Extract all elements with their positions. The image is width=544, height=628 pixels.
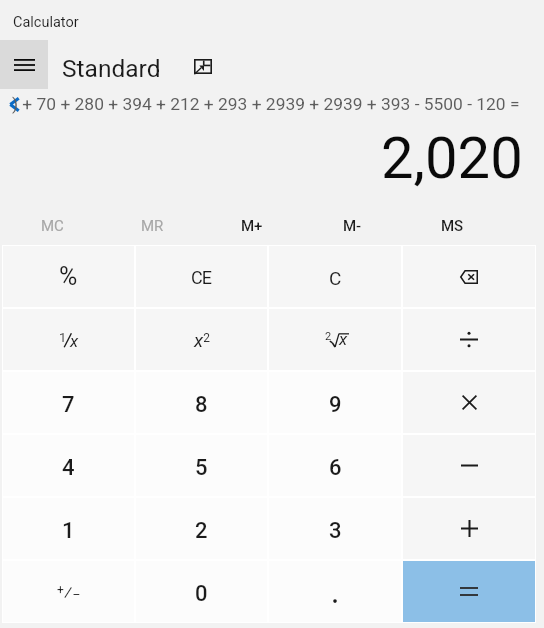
button[interactable]: Backspace bbox=[403, 246, 535, 307]
button[interactable]: M+ bbox=[202, 206, 302, 245]
button[interactable]: Open navigation menu bbox=[0, 40, 48, 89]
button[interactable]: 7 bbox=[3, 372, 134, 433]
staticText: 9 bbox=[329, 392, 342, 418]
staticText: M- bbox=[343, 217, 362, 235]
button[interactable]: 1 bbox=[3, 309, 134, 370]
other: Subtract bbox=[403, 435, 535, 496]
staticText: 1 bbox=[59, 330, 67, 345]
button[interactable]: MS bbox=[402, 206, 502, 245]
staticText: 3 bbox=[329, 518, 342, 544]
button[interactable]: 6 bbox=[269, 435, 401, 496]
button[interactable]: 1 bbox=[3, 498, 134, 559]
staticText: Calculator bbox=[13, 14, 79, 31]
staticText: Standard bbox=[62, 54, 161, 83]
button[interactable]: 5 bbox=[136, 435, 267, 496]
staticText: x bbox=[70, 331, 79, 351]
staticText: 7 bbox=[62, 392, 75, 418]
staticText: MR bbox=[141, 217, 164, 235]
button[interactable]: Subtract bbox=[403, 435, 535, 496]
button[interactable]: MR bbox=[102, 206, 202, 245]
other: Add bbox=[403, 498, 535, 559]
button[interactable]: CE bbox=[136, 246, 267, 307]
staticText: x bbox=[339, 329, 348, 349]
staticText: C bbox=[329, 267, 342, 289]
button[interactable]: Keep on top bbox=[187, 51, 219, 81]
button[interactable]: M- bbox=[302, 206, 402, 245]
other: Divide bbox=[403, 309, 535, 370]
button[interactable] bbox=[269, 561, 401, 622]
staticText: CE bbox=[191, 267, 212, 288]
button[interactable]: 4 bbox=[3, 435, 134, 496]
button[interactable]: Equals bbox=[403, 561, 535, 622]
staticText: M+ bbox=[241, 217, 263, 235]
button[interactable]: Scroll history left bbox=[4, 94, 24, 114]
button[interactable]: MC bbox=[2, 206, 102, 245]
staticText: 1 bbox=[62, 518, 75, 544]
other: Equals bbox=[403, 561, 535, 622]
staticText: MS bbox=[441, 217, 464, 235]
staticText: % bbox=[59, 262, 78, 291]
button[interactable]: +⁄– bbox=[3, 561, 134, 622]
staticText: 2 bbox=[325, 330, 332, 343]
button[interactable]: Add bbox=[403, 498, 535, 559]
button[interactable]: 2 bbox=[269, 309, 401, 370]
other: Multiply bbox=[403, 372, 535, 433]
staticText: +⁄– bbox=[57, 581, 81, 603]
button[interactable]: 3 bbox=[269, 498, 401, 559]
staticText: 2 bbox=[195, 518, 208, 544]
button[interactable]: Multiply bbox=[403, 372, 535, 433]
staticText: x2 bbox=[194, 329, 210, 351]
staticText: 2,020 bbox=[381, 124, 523, 192]
staticText: MC bbox=[41, 217, 64, 235]
staticText: ) + 70 + 280 + 394 + 212 + 293 + 2939 + … bbox=[12, 94, 520, 114]
button[interactable]: 8 bbox=[136, 372, 267, 433]
other: Backspace bbox=[403, 246, 535, 307]
staticText: 8 bbox=[195, 392, 208, 418]
button[interactable]: C bbox=[269, 246, 401, 307]
button[interactable]: x2 bbox=[136, 309, 267, 370]
button[interactable]: % bbox=[3, 246, 134, 307]
staticText: 6 bbox=[329, 455, 342, 481]
button[interactable]: 9 bbox=[269, 372, 401, 433]
button[interactable]: 0 bbox=[136, 561, 267, 622]
button[interactable]: 2 bbox=[136, 498, 267, 559]
staticText: 4 bbox=[62, 455, 75, 481]
staticText: 0 bbox=[195, 581, 208, 607]
button[interactable]: Divide bbox=[403, 309, 535, 370]
staticText: 5 bbox=[195, 455, 208, 481]
